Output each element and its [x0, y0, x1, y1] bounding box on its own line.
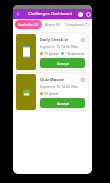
button[interactable]: Quiz Master: [14, 72, 89, 111]
staticText: Active (0): [45, 22, 61, 27]
button[interactable]: Daily Check-in: [14, 32, 89, 71]
button[interactable]: Active (0): [42, 20, 64, 29]
staticText: Challenges Dashboard: [28, 11, 73, 17]
staticText: Available (2): [18, 22, 39, 27]
button[interactable]: Info: [80, 37, 85, 42]
staticText: Expires in: [40, 84, 56, 89]
staticText: 1d 0h 00m: [61, 84, 78, 89]
button[interactable]: Accept: [40, 58, 85, 68]
staticText: 1d 0h 00m: [61, 44, 78, 49]
staticText: Daily Check-in: [40, 37, 80, 42]
staticText: Accept: [57, 61, 69, 66]
staticText: Quiz Master: [40, 77, 80, 82]
button[interactable]: Back: [13, 9, 23, 19]
staticText: 70 points: [44, 51, 59, 56]
button[interactable]: Completed (1): [64, 20, 90, 29]
staticText: 1 Diamonds: [65, 51, 85, 56]
button[interactable]: Available (2): [15, 20, 42, 29]
staticText: 50 points: [44, 91, 59, 96]
button[interactable]: Accept: [40, 98, 85, 108]
button[interactable]: Info: [80, 77, 85, 82]
button[interactable]: History: [76, 9, 84, 19]
button[interactable]: Help: [84, 9, 92, 19]
staticText: Accept: [57, 101, 69, 106]
staticText: Expires in: [40, 44, 56, 49]
staticText: Completed (1): [65, 22, 89, 27]
